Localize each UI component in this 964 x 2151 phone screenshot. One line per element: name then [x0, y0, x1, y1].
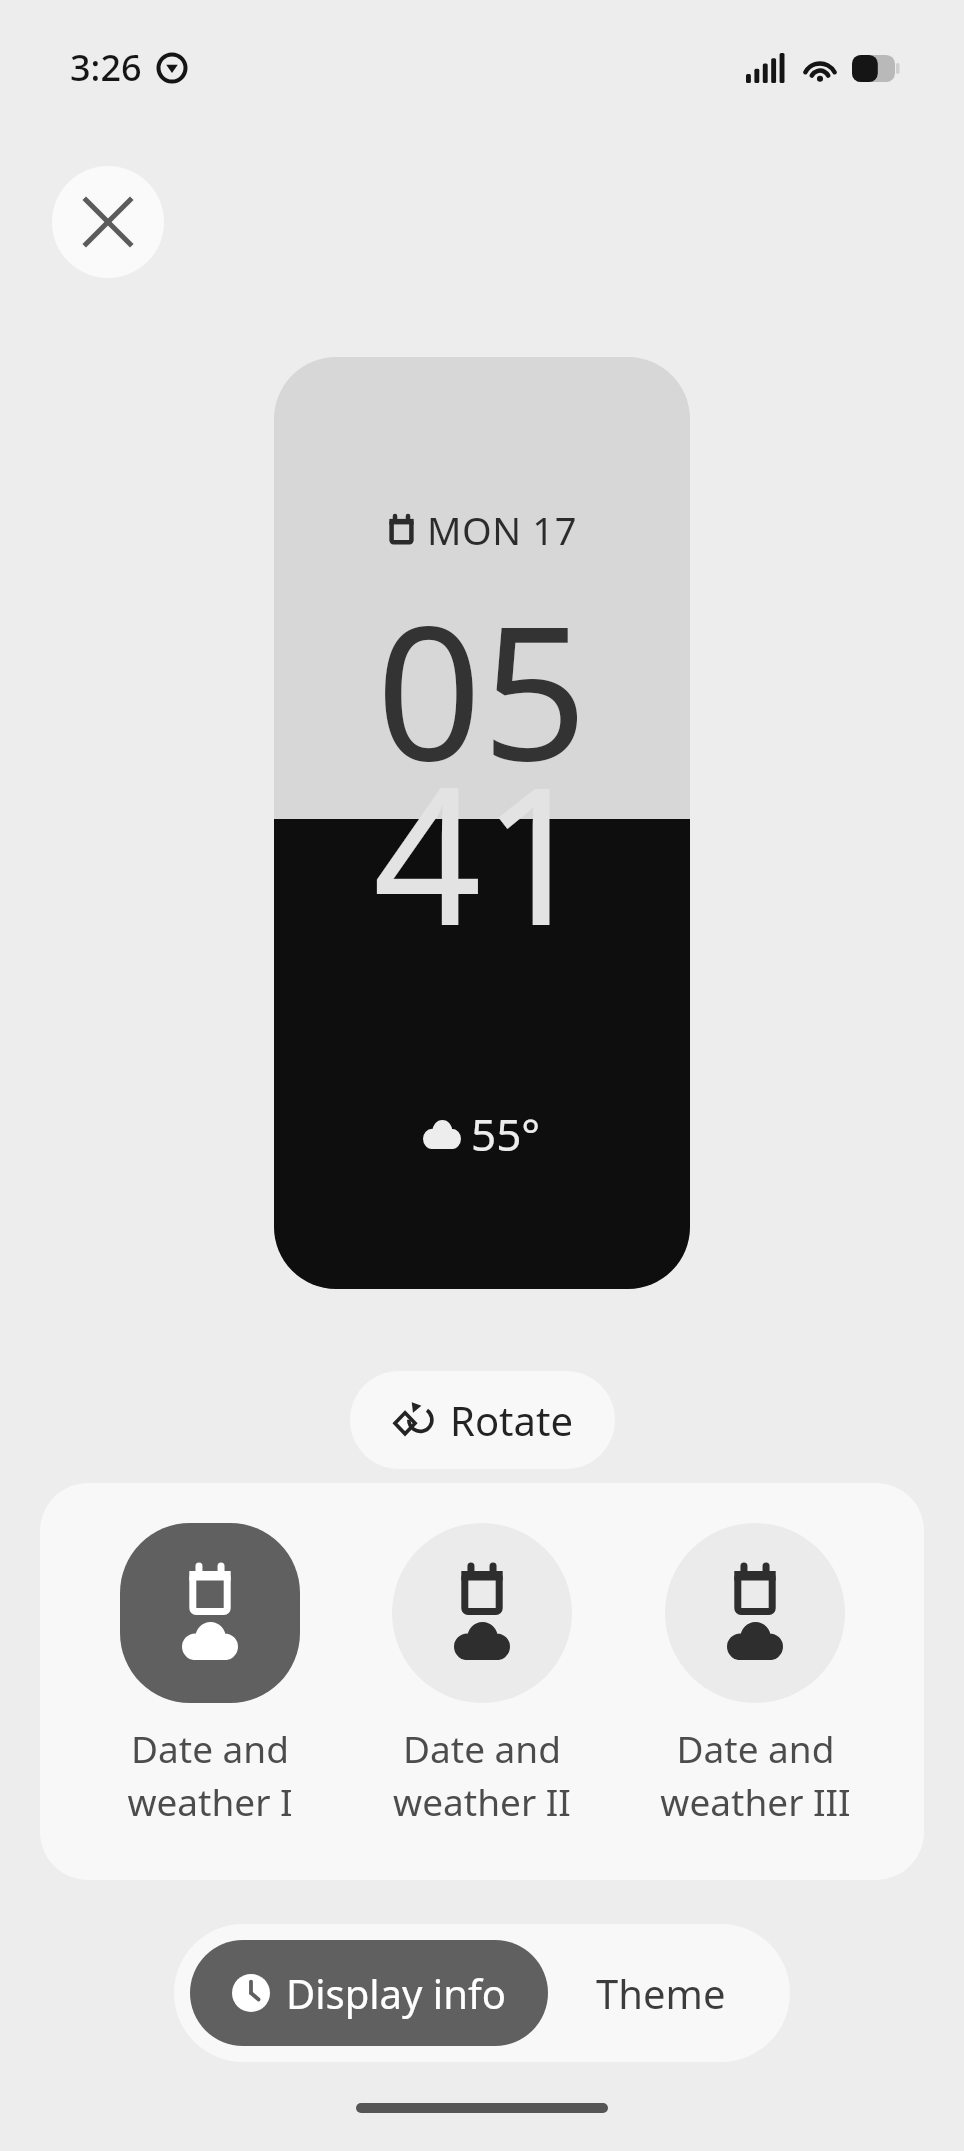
button[interactable]: Theme	[548, 1940, 774, 2046]
button[interactable]: MON 17	[274, 357, 690, 1289]
staticText: 55°	[471, 1104, 541, 1164]
staticText: Date and weather III	[660, 1723, 851, 1827]
staticText: 05	[376, 562, 588, 814]
button[interactable]: Date and weather III	[630, 1523, 880, 1827]
staticText: MON 17	[427, 504, 577, 556]
button[interactable]: Date and weather I	[85, 1523, 335, 1827]
staticText: Date and weather II	[393, 1723, 571, 1827]
staticText: 41	[373, 722, 591, 981]
button[interactable]: Display info	[190, 1940, 548, 2046]
button[interactable]: Rotate	[350, 1371, 615, 1469]
button[interactable]: Close	[52, 166, 164, 278]
staticText: Date and weather I	[127, 1723, 293, 1827]
staticText: Display info	[286, 1966, 506, 2020]
button[interactable]: Date and weather II	[357, 1523, 607, 1827]
staticText: 3:26	[70, 43, 142, 92]
staticText: Theme	[596, 1966, 726, 2020]
staticText: Rotate	[450, 1393, 573, 1447]
